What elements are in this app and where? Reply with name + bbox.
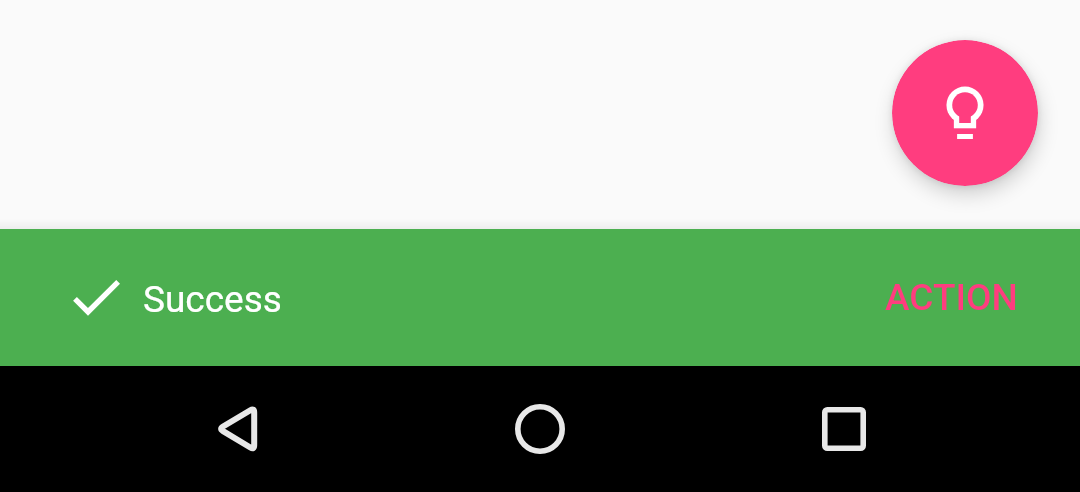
button[interactable]: Tips: [892, 40, 1038, 186]
button[interactable]: Success: [0, 229, 1080, 366]
staticText: Success: [143, 278, 282, 321]
staticText: ACTION: [885, 276, 1018, 319]
button[interactable]: Back: [177, 366, 297, 492]
button[interactable]: Home: [480, 366, 600, 492]
button[interactable]: Recents: [784, 366, 904, 492]
button[interactable]: ACTION: [853, 252, 1050, 343]
